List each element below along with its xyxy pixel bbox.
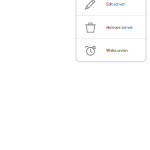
- staticText: Edit server: [106, 1, 125, 7]
- button[interactable]: Remove server: [76, 16, 146, 38]
- button[interactable]: Wake-on-lan: [76, 39, 146, 61]
- staticText: Remove server: [106, 24, 133, 30]
- staticText: Wake-on-lan: [106, 48, 127, 53]
- button[interactable]: Edit server: [76, 0, 146, 15]
